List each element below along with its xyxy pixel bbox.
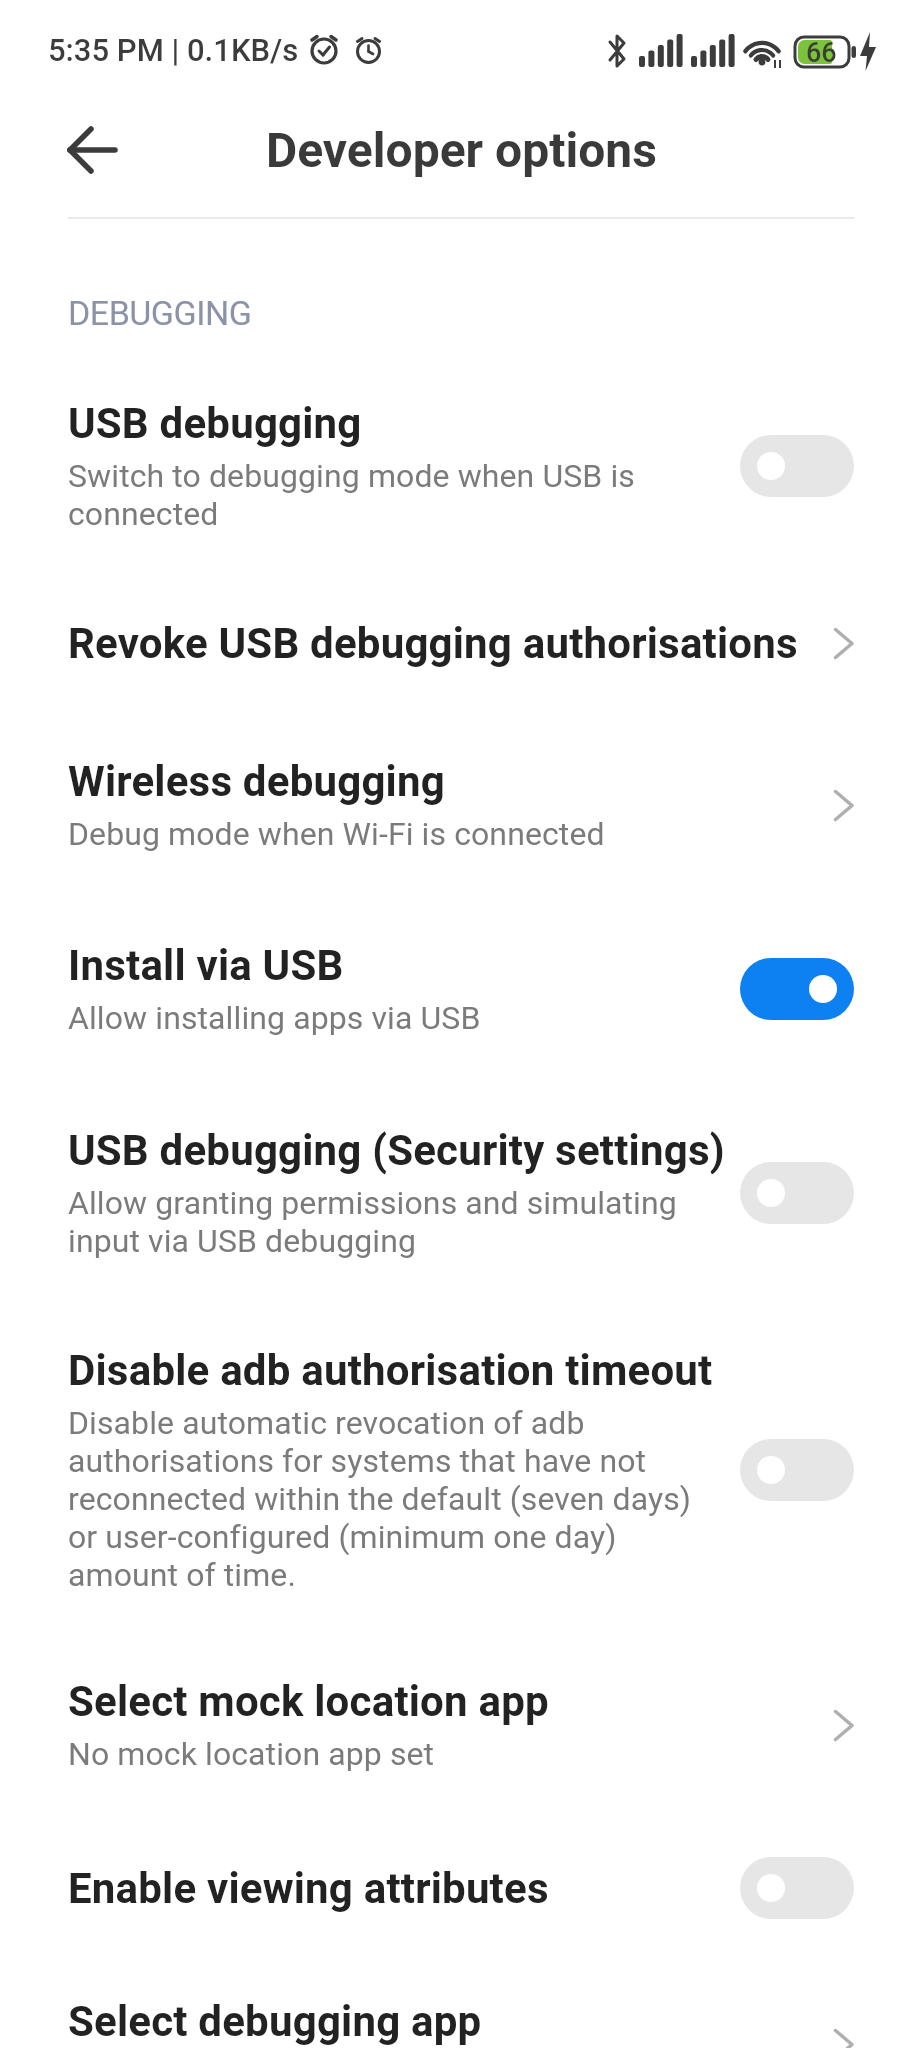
button[interactable] (757, 1439, 837, 1501)
staticText: DEBUGGING (68, 293, 252, 333)
button[interactable]: USB debugging (Security settings) (68, 1126, 854, 1260)
button[interactable]: Wireless debugging (68, 757, 854, 853)
staticText: Allow granting permissions and simulatin… (68, 1184, 677, 1260)
staticText: Allow installing apps via USB (68, 999, 481, 1037)
staticText: Disable adb authorisation timeout (68, 1346, 713, 1395)
staticText: Revoke USB debugging authorisations (68, 619, 798, 668)
staticText: Select debugging app (68, 1997, 482, 2046)
button[interactable] (757, 1162, 837, 1224)
button[interactable]: Select debugging app (68, 1997, 854, 2046)
button[interactable]: Enable viewing attributes (68, 1857, 854, 1919)
staticText: USB debugging (Security settings) (68, 1126, 725, 1175)
staticText: 66 (806, 37, 837, 69)
button[interactable] (757, 958, 837, 1020)
staticText: Switch to debugging mode when USB is con… (68, 457, 635, 533)
staticText: Debug mode when Wi-Fi is connected (68, 815, 605, 853)
staticText: Wireless debugging (68, 757, 445, 806)
staticText: USB debugging (68, 399, 362, 448)
staticText: No mock location app set (68, 1735, 435, 1773)
button[interactable] (68, 127, 117, 173)
button[interactable]: Select mock location app (68, 1677, 854, 1773)
staticText: 5:35 PM | 0.1KB/s (48, 32, 299, 68)
button[interactable]: Install via USB (68, 941, 854, 1037)
button[interactable] (757, 1857, 837, 1919)
button[interactable]: USB debugging (68, 399, 854, 533)
staticText: Select mock location app (68, 1677, 549, 1726)
button[interactable]: Revoke USB debugging authorisations (68, 619, 854, 668)
staticText: Install via USB (68, 941, 344, 990)
staticText: Developer options (266, 122, 657, 178)
button[interactable] (757, 435, 837, 497)
staticText: Disable automatic revocation of adb auth… (68, 1404, 692, 1594)
staticText: Enable viewing attributes (68, 1864, 549, 1913)
button[interactable]: Disable adb authorisation timeout (68, 1346, 854, 1594)
